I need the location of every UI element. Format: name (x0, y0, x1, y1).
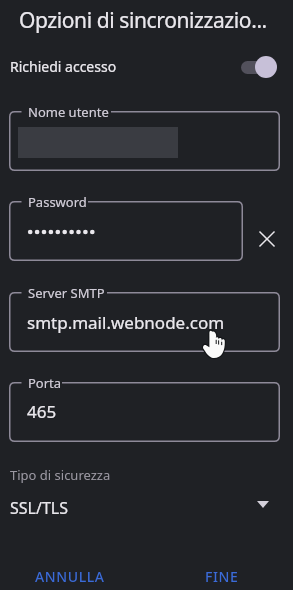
staticText: Password (28, 193, 87, 211)
button[interactable]: Password (9, 201, 243, 261)
staticText: ANNULLA (35, 567, 105, 586)
staticText: Server SMTP (28, 284, 105, 302)
button[interactable]: Server SMTP (9, 292, 280, 352)
button[interactable]: Richiedi accesso attivo (241, 55, 277, 79)
button[interactable]: Richiedi accesso (0, 50, 293, 83)
staticText: FINE (205, 567, 239, 586)
button[interactable]: Tipo di sicurezza (0, 462, 293, 518)
staticText: Nome utente (28, 103, 109, 121)
button[interactable]: FINE (190, 564, 253, 588)
button[interactable]: Porta (9, 382, 280, 442)
button[interactable]: ANNULLA (27, 564, 112, 588)
staticText: Opzioni di sincronizzazio... (19, 6, 267, 35)
staticText: 465 (27, 400, 57, 423)
button[interactable]: Nome utente (9, 111, 280, 171)
staticText: Richiedi accesso (10, 57, 117, 76)
staticText: Porta (28, 374, 62, 392)
button[interactable]: Cancella (251, 223, 283, 255)
staticText: SSL/TLS (10, 497, 68, 519)
staticText: smtp.mail.webnode.com (27, 311, 225, 334)
staticText: Tipo di sicurezza (10, 466, 111, 484)
